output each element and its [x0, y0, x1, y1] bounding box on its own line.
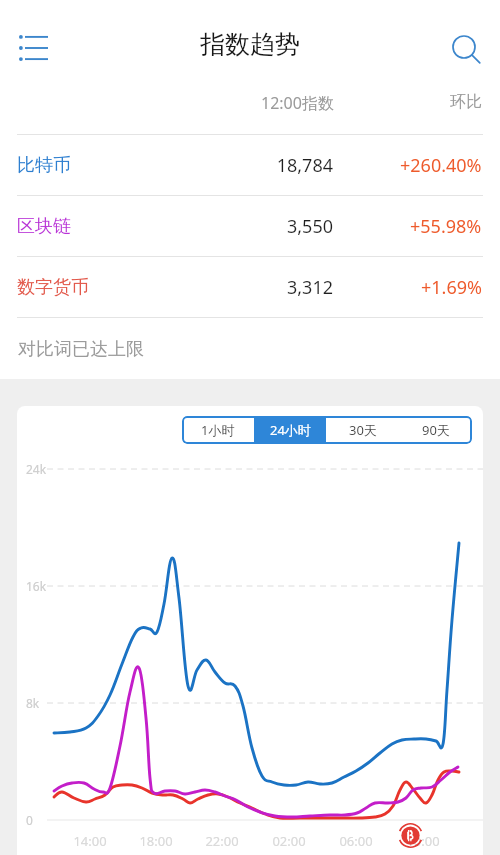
- staticText: 02:00: [267, 832, 311, 850]
- button[interactable]: 数字货币: [0, 257, 500, 317]
- staticText: 30天: [349, 421, 377, 439]
- staticText: 24k: [26, 461, 47, 477]
- staticText: 24小时: [270, 421, 311, 439]
- staticText: 16k: [26, 578, 47, 594]
- staticText: 18:00: [134, 832, 178, 850]
- staticText: 数字货币: [17, 276, 89, 299]
- button[interactable]: 30天: [326, 416, 399, 444]
- staticText: 3,312: [0, 275, 333, 300]
- button[interactable]: 24小时: [254, 416, 326, 444]
- staticText: 18,784: [0, 153, 333, 178]
- staticText: 比特币: [17, 154, 71, 177]
- staticText: 环比: [450, 92, 482, 112]
- button[interactable]: Search: [450, 34, 500, 84]
- staticText: 0: [26, 812, 33, 828]
- staticText: 90天: [422, 421, 450, 439]
- button[interactable]: 1小时: [182, 416, 254, 444]
- staticText: +1.69%: [421, 275, 482, 300]
- staticText: +260.40%: [400, 153, 482, 178]
- staticText: 区块链: [17, 215, 71, 238]
- staticText: +55.98%: [410, 214, 482, 239]
- staticText: 1小时: [201, 421, 235, 439]
- staticText: 8k: [26, 695, 40, 711]
- staticText: 12:00指数: [261, 92, 334, 114]
- button[interactable]: 比特币: [0, 135, 500, 195]
- staticText: 10:00: [401, 832, 445, 850]
- button[interactable]: 90天: [399, 416, 472, 444]
- button[interactable]: 区块链: [0, 196, 500, 256]
- staticText: 06:00: [334, 832, 378, 850]
- staticText: 3,550: [0, 214, 333, 239]
- staticText: 14:00: [68, 832, 112, 850]
- button[interactable]: Menu: [11, 20, 55, 76]
- staticText: 指数趋势: [200, 29, 300, 60]
- staticText: 对比词已达上限: [18, 338, 144, 361]
- staticText: 22:00: [200, 832, 244, 850]
